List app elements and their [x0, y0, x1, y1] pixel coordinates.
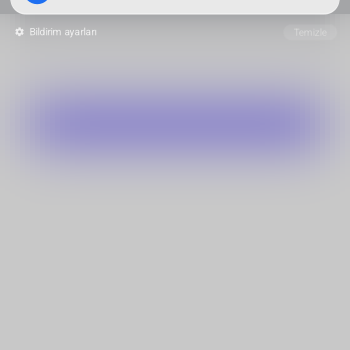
staticText: Temizle — [294, 26, 327, 38]
staticText: Bildirim ayarları — [29, 26, 97, 38]
button[interactable]: Temizle — [282, 23, 338, 41]
button[interactable]: Bildirim ayarları — [13, 26, 97, 38]
